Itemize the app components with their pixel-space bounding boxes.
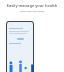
staticText: Track visits and more — [3, 9, 61, 12]
staticText: Easily manage your health — [3, 3, 61, 8]
